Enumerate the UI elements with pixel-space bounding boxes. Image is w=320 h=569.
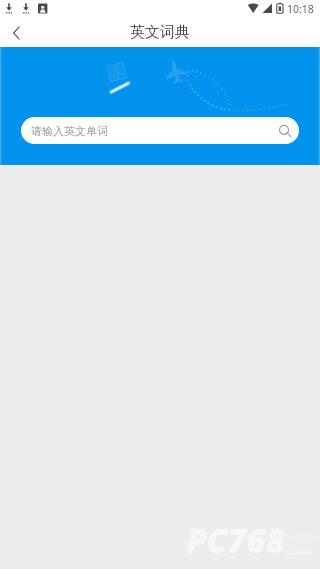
staticText: 10:18: [287, 2, 314, 16]
button[interactable]: Back: [0, 18, 33, 47]
button[interactable]: 请输入英文单词: [21, 117, 299, 144]
staticText: PC768: [186, 518, 285, 563]
staticText: 请输入英文单词: [31, 124, 108, 138]
staticText: 英文词典: [130, 23, 190, 42]
